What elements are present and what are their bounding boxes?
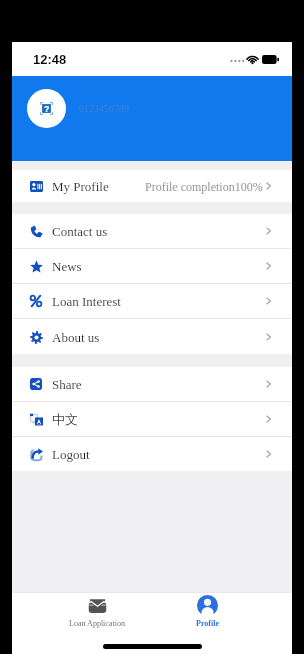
button[interactable]: Logout bbox=[12, 437, 292, 471]
staticText: Profile completion100% bbox=[145, 180, 263, 193]
staticText: 0123456789 bbox=[79, 103, 129, 114]
button[interactable]: About us bbox=[12, 319, 292, 354]
button[interactable]: News bbox=[12, 249, 292, 283]
button[interactable]: Loan Interest bbox=[12, 284, 292, 318]
button[interactable]: Contact us bbox=[12, 214, 292, 248]
button[interactable]: 中文 bbox=[12, 402, 292, 436]
staticText: ? bbox=[44, 104, 50, 114]
staticText: Loan Application bbox=[69, 619, 125, 628]
button[interactable]: Profile photo bbox=[27, 89, 66, 128]
staticText: Profile bbox=[196, 619, 219, 628]
button[interactable]: Share bbox=[12, 367, 292, 401]
staticText: 中文 bbox=[52, 411, 78, 427]
staticText: My Profile bbox=[52, 179, 109, 193]
button[interactable]: Profile bbox=[152, 592, 262, 634]
staticText: Logout bbox=[52, 447, 90, 461]
staticText: News bbox=[52, 259, 82, 273]
button[interactable]: My Profile bbox=[12, 170, 292, 202]
button[interactable]: Loan Application bbox=[42, 592, 152, 634]
staticText: Contact us bbox=[52, 224, 108, 238]
staticText: Loan Interest bbox=[52, 294, 121, 308]
staticText: Share bbox=[52, 377, 82, 391]
staticText: About us bbox=[52, 330, 100, 344]
staticText: 12:48 bbox=[33, 52, 67, 67]
